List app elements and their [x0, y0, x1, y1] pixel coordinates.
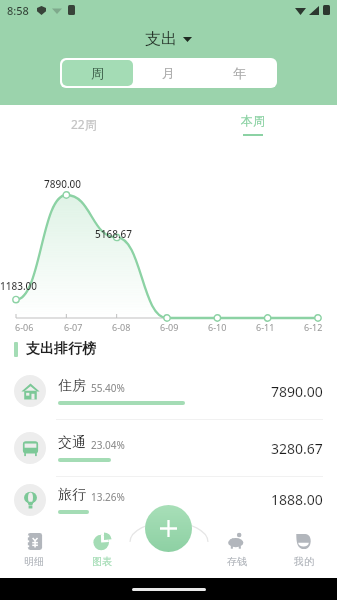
staticText: 8:58: [7, 3, 29, 18]
staticText: 6-08: [112, 321, 131, 333]
staticText: 年: [233, 65, 246, 81]
staticText: 图表: [92, 555, 112, 568]
button[interactable]: 本周: [168, 105, 337, 143]
staticText: 1183.00: [0, 279, 38, 293]
staticText: 23.04%: [91, 438, 125, 452]
staticText: 周: [91, 65, 104, 81]
button[interactable]: 我的: [270, 522, 337, 578]
button[interactable]: 年: [204, 60, 275, 86]
button[interactable]: 支出: [139, 27, 198, 51]
staticText: 旅行: [58, 486, 86, 504]
staticText: 6-09: [160, 321, 179, 333]
staticText: 6-11: [256, 321, 275, 333]
button[interactable]: 周: [62, 60, 133, 86]
staticText: 6-06: [15, 321, 34, 333]
staticText: 6-07: [64, 321, 83, 333]
staticText: 6-10: [208, 321, 227, 333]
staticText: 支出: [145, 29, 177, 49]
button[interactable]: 存钱: [203, 522, 270, 578]
staticText: 5168.67: [95, 227, 133, 241]
button[interactable]: 图表: [68, 522, 136, 578]
button[interactable]: 22周: [0, 105, 168, 143]
staticText: 存钱: [227, 555, 247, 568]
button[interactable]: 月: [133, 60, 204, 86]
staticText: 3280.67: [271, 439, 323, 458]
staticText: 交通: [58, 434, 86, 452]
staticText: 13.26%: [91, 490, 125, 504]
staticText: 22周: [71, 116, 97, 132]
staticText: 住房: [58, 377, 86, 395]
button[interactable]: 住房: [0, 363, 337, 419]
staticText: 我的: [294, 555, 314, 568]
staticText: 本周: [241, 113, 265, 128]
staticText: 7890.00: [271, 382, 323, 401]
staticText: 明细: [24, 555, 44, 568]
button[interactable]: 交通: [0, 420, 337, 476]
staticText: 55.40%: [91, 381, 125, 395]
button[interactable]: 旅行: [0, 477, 337, 522]
staticText: 1888.00: [271, 490, 323, 509]
button[interactable]: 明细: [0, 522, 68, 578]
staticText: 6-12: [304, 321, 323, 333]
staticText: 月: [162, 65, 175, 81]
staticText: 支出排行榜: [26, 340, 96, 358]
button[interactable]: Add record: [145, 505, 192, 552]
staticText: 7890.00: [44, 177, 82, 191]
